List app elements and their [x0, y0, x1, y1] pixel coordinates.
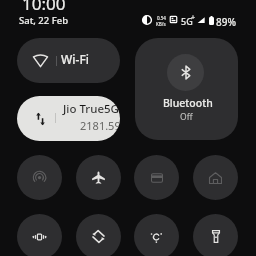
- staticText: KB/s: [156, 21, 166, 27]
- staticText: Off: [180, 111, 193, 123]
- button[interactable]: Vibrate: [17, 214, 62, 256]
- button[interactable]: Hotspot: [17, 155, 62, 200]
- button[interactable]: Wi-Fi: [17, 38, 120, 83]
- staticText: 0.54: [157, 15, 166, 21]
- button[interactable]: Wallet: [134, 155, 179, 200]
- staticText: 89%: [216, 15, 236, 29]
- button[interactable]: Auto rotate: [76, 214, 121, 256]
- staticText: Jio True5G: [63, 101, 119, 117]
- staticText: Wi-Fi: [61, 51, 89, 67]
- staticText: 5G: [181, 15, 193, 27]
- button[interactable]: Bluetooth: [135, 38, 238, 140]
- staticText: +: [191, 13, 196, 23]
- staticText: Sat, 22 Feb: [19, 14, 69, 27]
- button[interactable]: Jio True5G: [17, 96, 120, 141]
- button[interactable]: Night light: [134, 214, 179, 256]
- staticText: 2181.59 MB: [80, 118, 120, 133]
- other: Do not disturb: [142, 15, 152, 25]
- button[interactable]: Airplane mode: [76, 155, 121, 200]
- button[interactable]: Flashlight: [193, 214, 238, 256]
- button[interactable]: Home: [193, 155, 238, 200]
- staticText: Bluetooth: [163, 96, 213, 110]
- staticText: 10:00: [22, 0, 66, 15]
